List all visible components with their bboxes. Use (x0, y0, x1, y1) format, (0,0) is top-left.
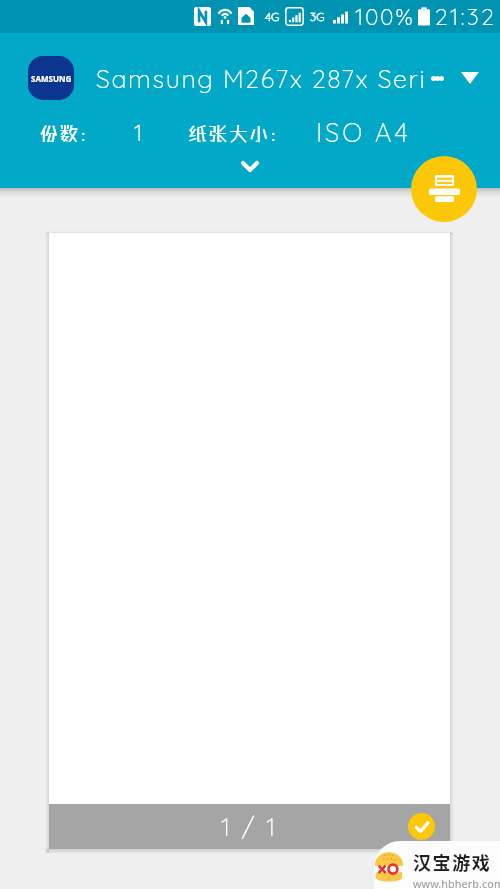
button[interactable]: 份数： (39, 118, 143, 147)
button[interactable]: Print (411, 156, 477, 222)
button[interactable]: 纸张大小： (188, 116, 411, 149)
staticText: 纸张大小： (188, 122, 291, 144)
staticText: 1 (134, 118, 143, 147)
staticText: 4G (265, 9, 280, 24)
button[interactable]: Page selected (408, 813, 435, 840)
staticText: 份数： (39, 122, 101, 144)
staticText: ISO A4 (316, 116, 411, 149)
staticText: 汉宝游戏 (413, 849, 492, 875)
button[interactable]: Expand print options (0, 149, 500, 183)
staticText: www.hbherb.com (413, 876, 500, 889)
staticText: 100% (355, 2, 415, 31)
staticText: 3G (310, 9, 325, 24)
button[interactable]: SAMSUNG (0, 37, 500, 119)
button[interactable]: 1 / 1 (49, 233, 450, 849)
staticText: 21:32 (435, 2, 497, 31)
staticText: Samsung M267x 287x Seri (96, 63, 427, 94)
staticText: SAMSUNG (31, 73, 72, 84)
staticText: 1 / 1 (221, 811, 278, 842)
